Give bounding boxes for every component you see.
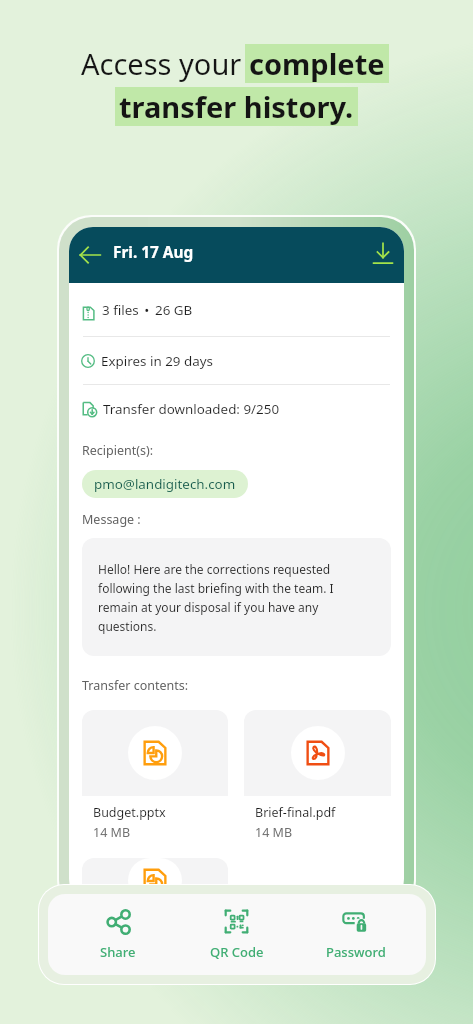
button[interactable]: Brief-final.pdf <box>244 710 391 842</box>
staticText: 14 MB <box>255 824 293 841</box>
staticText: Budget.pptx <box>93 804 166 821</box>
button[interactable]: Share <box>59 902 177 967</box>
staticText: Password <box>326 943 386 961</box>
staticText: 3 files • 26 GB <box>102 301 193 319</box>
staticText: transfer history. <box>119 87 354 126</box>
staticText: complete <box>249 44 385 83</box>
staticText: 14 MB <box>93 824 131 841</box>
button[interactable]: Download <box>371 242 395 266</box>
staticText: Transfer downloaded: 9/250 <box>103 400 280 418</box>
staticText: Transfer contents: <box>82 677 189 694</box>
button[interactable]: Budget.pptx <box>82 710 228 842</box>
button[interactable]: 3 files • 26 GB <box>69 283 404 336</box>
button[interactable]: Back <box>78 243 102 267</box>
button[interactable]: Transfer downloaded: 9/250 <box>69 385 404 432</box>
staticText: Message : <box>82 511 141 528</box>
staticText: Recipient(s): <box>82 442 154 459</box>
staticText: QR Code <box>210 943 264 961</box>
button[interactable]: Password <box>296 902 415 967</box>
button[interactable]: Report.docx <box>82 858 228 903</box>
staticText: Fri. 17 Aug <box>113 242 194 263</box>
button[interactable]: Expires in 29 days <box>69 337 404 384</box>
staticText: Expires in 29 days <box>101 352 213 370</box>
staticText: Access your <box>81 44 242 83</box>
staticText: Brief-final.pdf <box>255 804 336 821</box>
staticText: Hello! Here are the corrections requeste… <box>98 561 375 634</box>
button[interactable]: pmo@landigitech.com <box>82 470 248 498</box>
staticText: Share <box>100 943 136 961</box>
staticText: pmo@landigitech.com <box>94 475 236 493</box>
button[interactable]: QR Code <box>177 902 296 967</box>
